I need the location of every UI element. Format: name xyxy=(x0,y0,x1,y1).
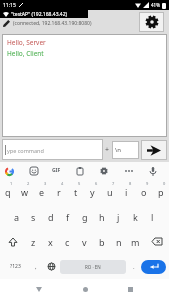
staticText: a xyxy=(14,211,20,223)
staticText: 41% xyxy=(151,2,160,8)
staticText: 7 xyxy=(112,181,115,186)
staticText: 5 xyxy=(78,181,81,186)
staticText: RO · EN xyxy=(85,264,101,270)
button[interactable]: n xyxy=(110,229,127,254)
staticText: d xyxy=(48,211,54,223)
staticText: 3 xyxy=(44,181,47,186)
button[interactable] xyxy=(98,165,110,177)
button[interactable]: v xyxy=(76,229,93,254)
button[interactable]: q xyxy=(0,179,16,204)
button[interactable]: a xyxy=(8,204,25,229)
button[interactable]: , xyxy=(28,254,43,279)
button[interactable]: w xyxy=(16,179,33,204)
staticText: v xyxy=(82,236,87,248)
staticText: j xyxy=(117,211,120,223)
staticText: b xyxy=(99,236,105,248)
button[interactable]: m xyxy=(127,229,144,254)
button[interactable]: s xyxy=(25,204,42,229)
staticText: 9 xyxy=(146,181,149,186)
button[interactable]: RO · EN xyxy=(60,260,126,274)
button[interactable]: f xyxy=(59,204,76,229)
staticText: m xyxy=(131,236,140,248)
staticText: . xyxy=(133,263,135,271)
button[interactable] xyxy=(0,229,25,254)
button[interactable]: \n xyxy=(115,141,139,159)
staticText: ype command xyxy=(7,147,44,154)
staticText: 11:15 xyxy=(3,2,16,9)
button[interactable] xyxy=(3,165,15,177)
button[interactable]: t xyxy=(67,179,84,204)
staticText: 8 xyxy=(129,181,132,186)
staticText: \n xyxy=(115,146,121,154)
staticText: e xyxy=(39,186,45,198)
button[interactable]: ype command xyxy=(5,139,103,160)
button[interactable]: GIF xyxy=(52,167,61,174)
button[interactable] xyxy=(125,284,135,294)
button[interactable]: k xyxy=(127,204,144,229)
button[interactable]: g xyxy=(76,204,93,229)
staticText: ?123 xyxy=(10,263,21,270)
staticText: z xyxy=(31,236,36,248)
button[interactable]: i xyxy=(118,179,135,204)
staticText: i xyxy=(125,186,128,198)
button[interactable]: u xyxy=(101,179,118,204)
staticText: s xyxy=(31,211,36,223)
button[interactable]: h xyxy=(93,204,110,229)
staticText: f xyxy=(66,211,70,223)
button[interactable]: p xyxy=(152,179,169,204)
staticText: 0 xyxy=(163,181,166,186)
button[interactable] xyxy=(43,254,60,279)
button[interactable]: l xyxy=(144,204,161,229)
staticText: "testAP" (192.168.43.42) xyxy=(11,11,68,18)
button[interactable]: o xyxy=(135,179,152,204)
staticText: k xyxy=(133,211,138,223)
staticText: , xyxy=(35,263,37,271)
staticText: Hello, Client xyxy=(7,49,44,58)
button[interactable]: c xyxy=(59,229,76,254)
button[interactable] xyxy=(141,140,167,160)
button[interactable] xyxy=(123,165,135,177)
staticText: w xyxy=(21,186,29,198)
button[interactable] xyxy=(147,165,159,177)
button[interactable]: z xyxy=(25,229,42,254)
button[interactable]: d xyxy=(42,204,59,229)
button[interactable] xyxy=(139,12,164,32)
staticText: o xyxy=(141,186,147,198)
button[interactable] xyxy=(74,165,86,177)
staticText: h xyxy=(99,211,105,223)
button[interactable] xyxy=(144,229,169,254)
staticText: g xyxy=(82,211,88,223)
staticText: Hello, Server xyxy=(7,38,46,47)
staticText: 6 xyxy=(95,181,98,186)
staticText: 2 xyxy=(27,181,30,186)
button[interactable]: b xyxy=(93,229,110,254)
staticText: (connected, 192.168.43.190:8080) xyxy=(13,20,92,27)
button[interactable] xyxy=(141,260,166,274)
staticText: y xyxy=(90,186,95,198)
staticText: t xyxy=(74,186,78,198)
staticText: 1 xyxy=(10,181,13,186)
button[interactable] xyxy=(34,284,44,294)
button[interactable]: ?123 xyxy=(2,254,28,279)
staticText: x xyxy=(48,236,53,248)
staticText: u xyxy=(107,186,113,198)
staticText: l xyxy=(151,211,154,223)
staticText: c xyxy=(65,236,70,248)
button[interactable] xyxy=(28,165,40,177)
button[interactable]: x xyxy=(42,229,59,254)
button[interactable]: j xyxy=(110,204,127,229)
button[interactable] xyxy=(80,284,90,294)
staticText: GIF xyxy=(52,167,61,174)
staticText: + xyxy=(105,145,110,155)
staticText: n xyxy=(116,236,122,248)
button[interactable]: y xyxy=(84,179,101,204)
staticText: 4 xyxy=(61,181,64,186)
staticText: p xyxy=(158,186,164,198)
button[interactable]: r xyxy=(50,179,67,204)
staticText: q xyxy=(5,186,11,198)
staticText: r xyxy=(57,186,61,198)
button[interactable]: e xyxy=(33,179,50,204)
